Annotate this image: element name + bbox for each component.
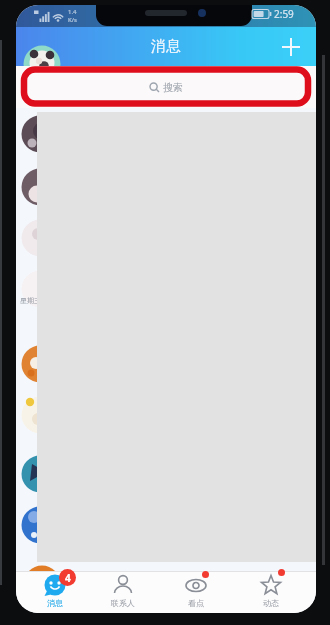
button[interactable]: 消息 (25, 571, 85, 613)
staticText: 星期三 (20, 296, 41, 305)
staticText: 消息 (151, 37, 181, 56)
staticText: 看点 (188, 598, 204, 608)
staticText: 动态 (263, 598, 279, 608)
button[interactable] (279, 35, 303, 59)
button[interactable]: 搜索 (30, 71, 302, 103)
staticText: 1.4 (68, 8, 77, 16)
button[interactable]: 联系人 (93, 571, 153, 613)
staticText: 4 (65, 571, 71, 585)
button[interactable]: 动态 (241, 571, 301, 613)
staticText: 2:59 (274, 7, 294, 21)
staticText: 消息 (47, 598, 63, 608)
staticText: 联系人 (111, 598, 135, 608)
button[interactable]: 看点 (166, 571, 226, 613)
staticText: 搜索 (163, 81, 183, 94)
staticText: K/s (68, 16, 77, 24)
